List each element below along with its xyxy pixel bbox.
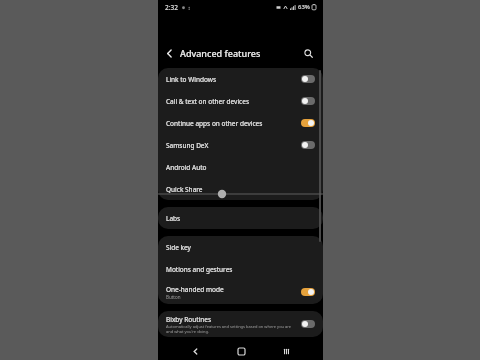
button[interactable]: Side key <box>158 236 323 258</box>
button[interactable]: Off <box>301 97 315 105</box>
staticText: 2:32 <box>165 3 178 12</box>
button[interactable]: Back <box>186 343 204 360</box>
button[interactable]: Bixby Routines <box>158 311 323 337</box>
button[interactable]: Motions and gestures <box>158 258 323 280</box>
staticText: One-handed mode <box>166 285 224 294</box>
button[interactable]: Link to Windows <box>158 68 323 90</box>
button[interactable]: Quick Share <box>158 178 323 200</box>
staticText: Button <box>166 294 181 300</box>
button[interactable]: Call & text on other devices <box>158 90 323 112</box>
staticText: Bixby Routines <box>166 315 212 324</box>
staticText: Samsung DeX <box>166 141 297 150</box>
staticText: Automatically adjust features and settin… <box>166 324 297 334</box>
staticText: Motions and gestures <box>166 265 233 274</box>
button[interactable]: Home <box>232 343 250 360</box>
button[interactable]: Android Auto <box>158 156 323 178</box>
button[interactable]: One-handed mode <box>158 280 323 304</box>
staticText: Link to Windows <box>166 75 297 84</box>
staticText: Call & text on other devices <box>166 97 297 106</box>
staticText: Quick Share <box>166 185 203 194</box>
button[interactable]: On <box>301 288 315 296</box>
button[interactable]: Recents <box>277 343 295 360</box>
button[interactable]: On <box>301 119 315 127</box>
staticText: Side key <box>166 243 191 252</box>
staticText: 63% <box>298 3 310 11</box>
button[interactable]: Continue apps on other devices <box>158 112 323 134</box>
button[interactable]: Search <box>298 43 318 63</box>
button[interactable]: Off <box>301 141 315 149</box>
staticText: Android Auto <box>166 163 207 172</box>
button[interactable]: Back <box>158 42 180 64</box>
button[interactable]: Off <box>301 75 315 83</box>
button[interactable]: Labs <box>158 207 323 229</box>
button[interactable]: Off <box>301 320 315 328</box>
staticText: Labs <box>166 214 181 223</box>
button[interactable]: Samsung DeX <box>158 134 323 156</box>
staticText: Continue apps on other devices <box>166 119 297 128</box>
staticText: Advanced features <box>180 47 261 59</box>
